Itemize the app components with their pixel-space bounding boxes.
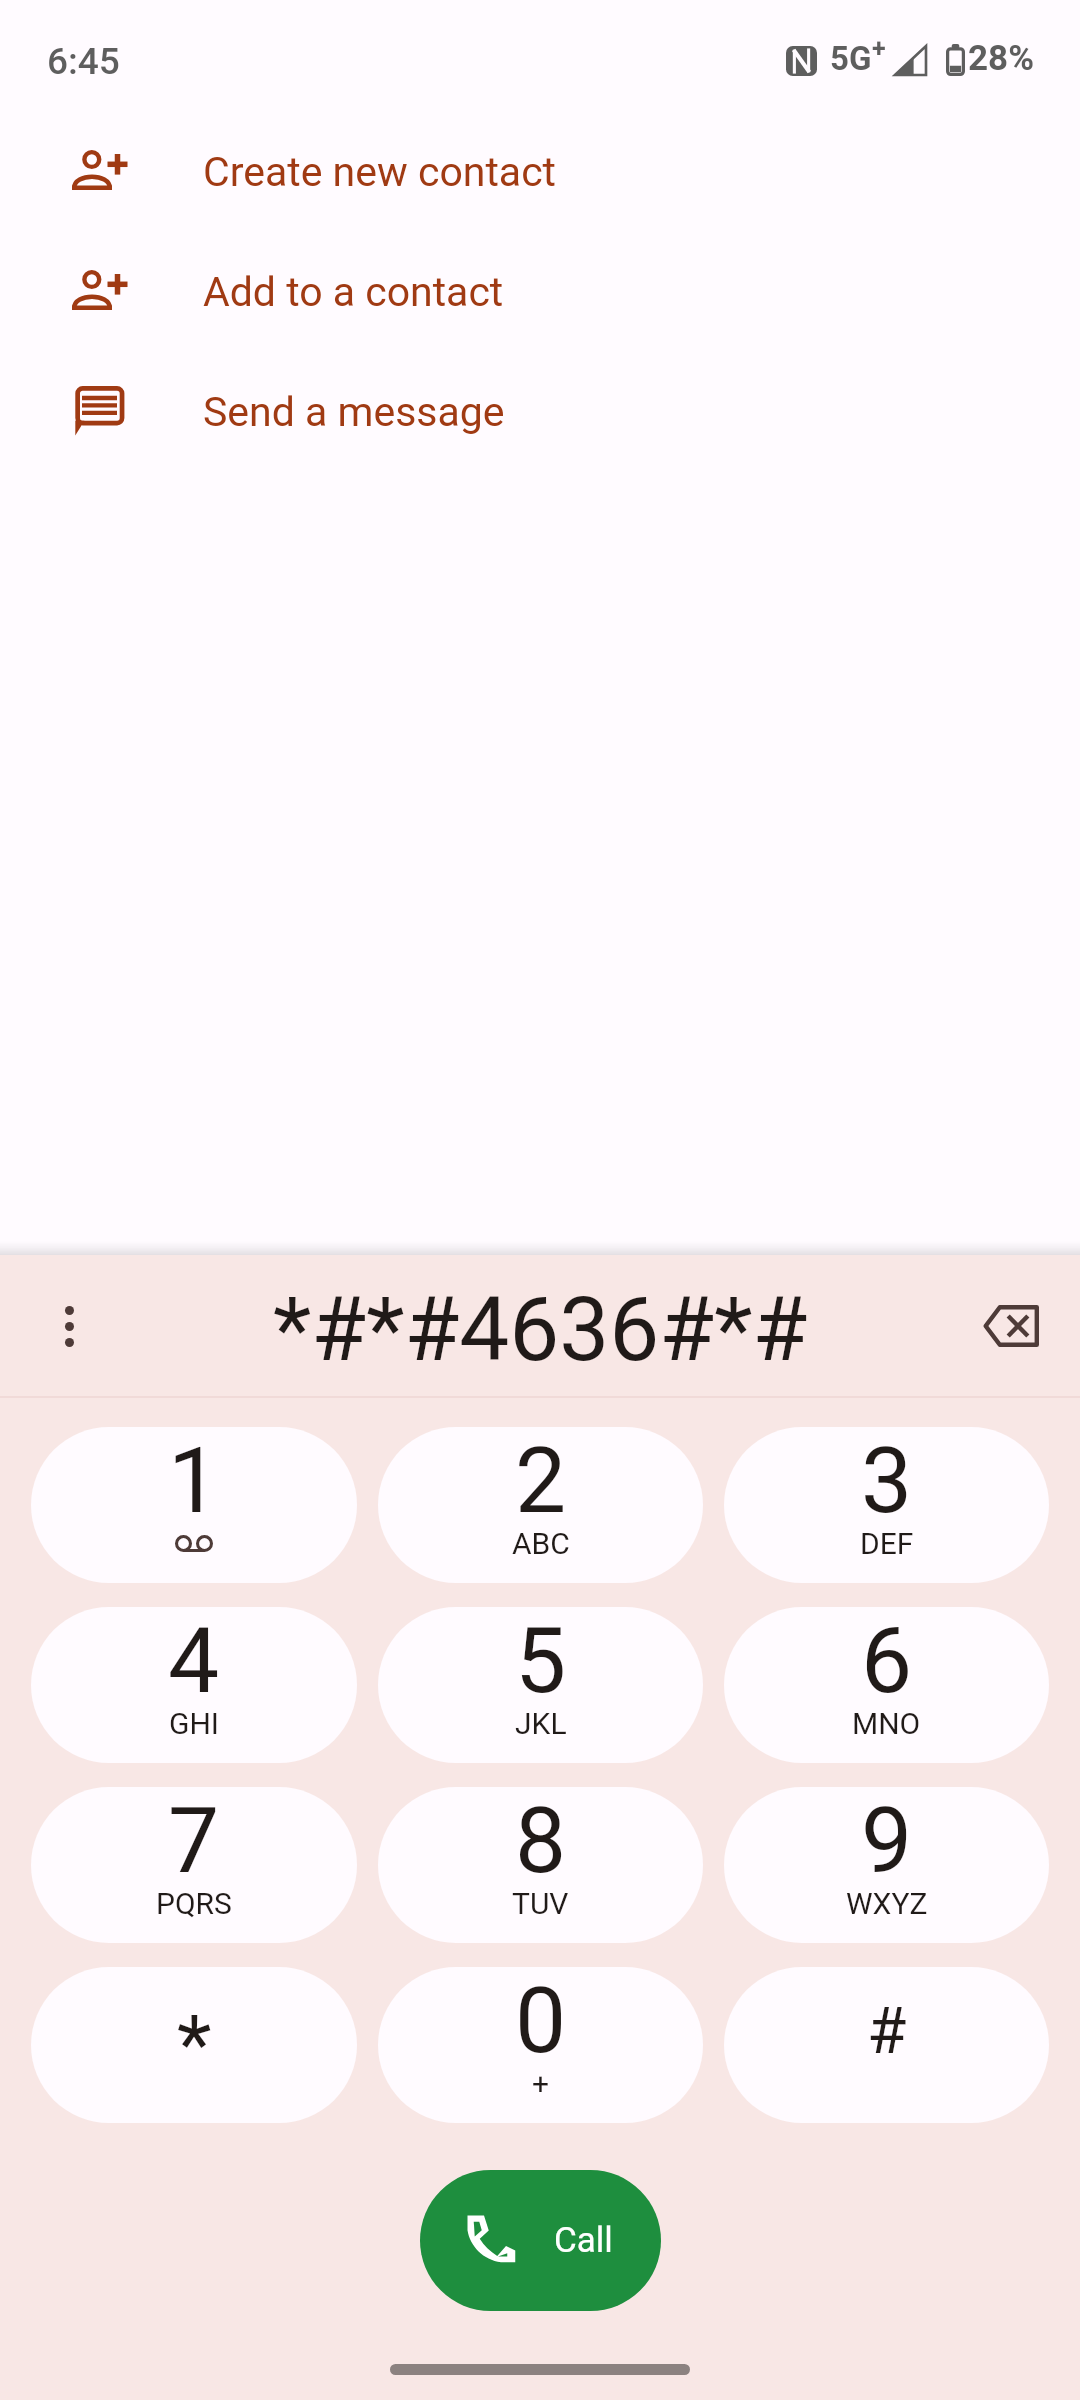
staticText: 28% [968, 38, 1035, 79]
button[interactable]: Backspace [966, 1281, 1056, 1371]
staticText: *#*#4636#*# [273, 1277, 808, 1381]
staticText: DEF [860, 1526, 914, 1561]
button[interactable]: 3 [724, 1427, 1049, 1583]
button[interactable]: 1 [31, 1427, 357, 1583]
staticText: 5 [515, 1608, 567, 1715]
staticText: # [867, 1994, 907, 2069]
button[interactable]: 8 [378, 1787, 703, 1943]
staticText: JKL [515, 1706, 567, 1741]
staticText: WXYZ [846, 1886, 928, 1921]
button[interactable]: 0 [378, 1967, 703, 2123]
button[interactable]: 9 [724, 1787, 1049, 1943]
staticText: 3 [861, 1428, 913, 1535]
button[interactable]: # [724, 1967, 1049, 2123]
staticText: 9 [861, 1788, 913, 1895]
staticText: 5G [830, 39, 872, 78]
staticText: Add to a contact [203, 268, 504, 316]
button[interactable]: 5 [378, 1607, 703, 1763]
button[interactable]: * [31, 1967, 357, 2123]
button[interactable]: 6 [724, 1607, 1049, 1763]
staticText: PQRS [156, 1886, 232, 1921]
staticText: 7 [168, 1788, 220, 1895]
staticText: * [177, 1998, 212, 2092]
staticText: GHI [169, 1706, 219, 1741]
staticText: TUV [512, 1886, 569, 1921]
staticText: 0 [515, 1968, 567, 2075]
button[interactable]: Create new contact [0, 112, 1080, 232]
staticText: ABC [512, 1526, 570, 1561]
staticText: Send a message [203, 388, 505, 436]
button[interactable]: Call [420, 2170, 661, 2311]
button[interactable]: 7 [31, 1787, 357, 1943]
button[interactable]: 4 [31, 1607, 357, 1763]
button[interactable]: Add to a contact [0, 232, 1080, 352]
staticText: Call [554, 2220, 613, 2261]
button[interactable]: 2 [378, 1427, 703, 1583]
staticText: 2 [515, 1428, 567, 1535]
button[interactable]: More options [29, 1286, 109, 1366]
staticText: 6:45 [47, 40, 120, 83]
staticText: MNO [852, 1706, 921, 1741]
staticText: 8 [515, 1788, 567, 1895]
staticText: + [532, 2066, 550, 2101]
staticText: Create new contact [203, 148, 557, 196]
staticText: 1 [168, 1428, 220, 1535]
staticText: 6 [861, 1608, 913, 1715]
staticText: 4 [168, 1608, 220, 1715]
button[interactable]: Send a message [0, 352, 1080, 472]
staticText: + [872, 34, 886, 63]
